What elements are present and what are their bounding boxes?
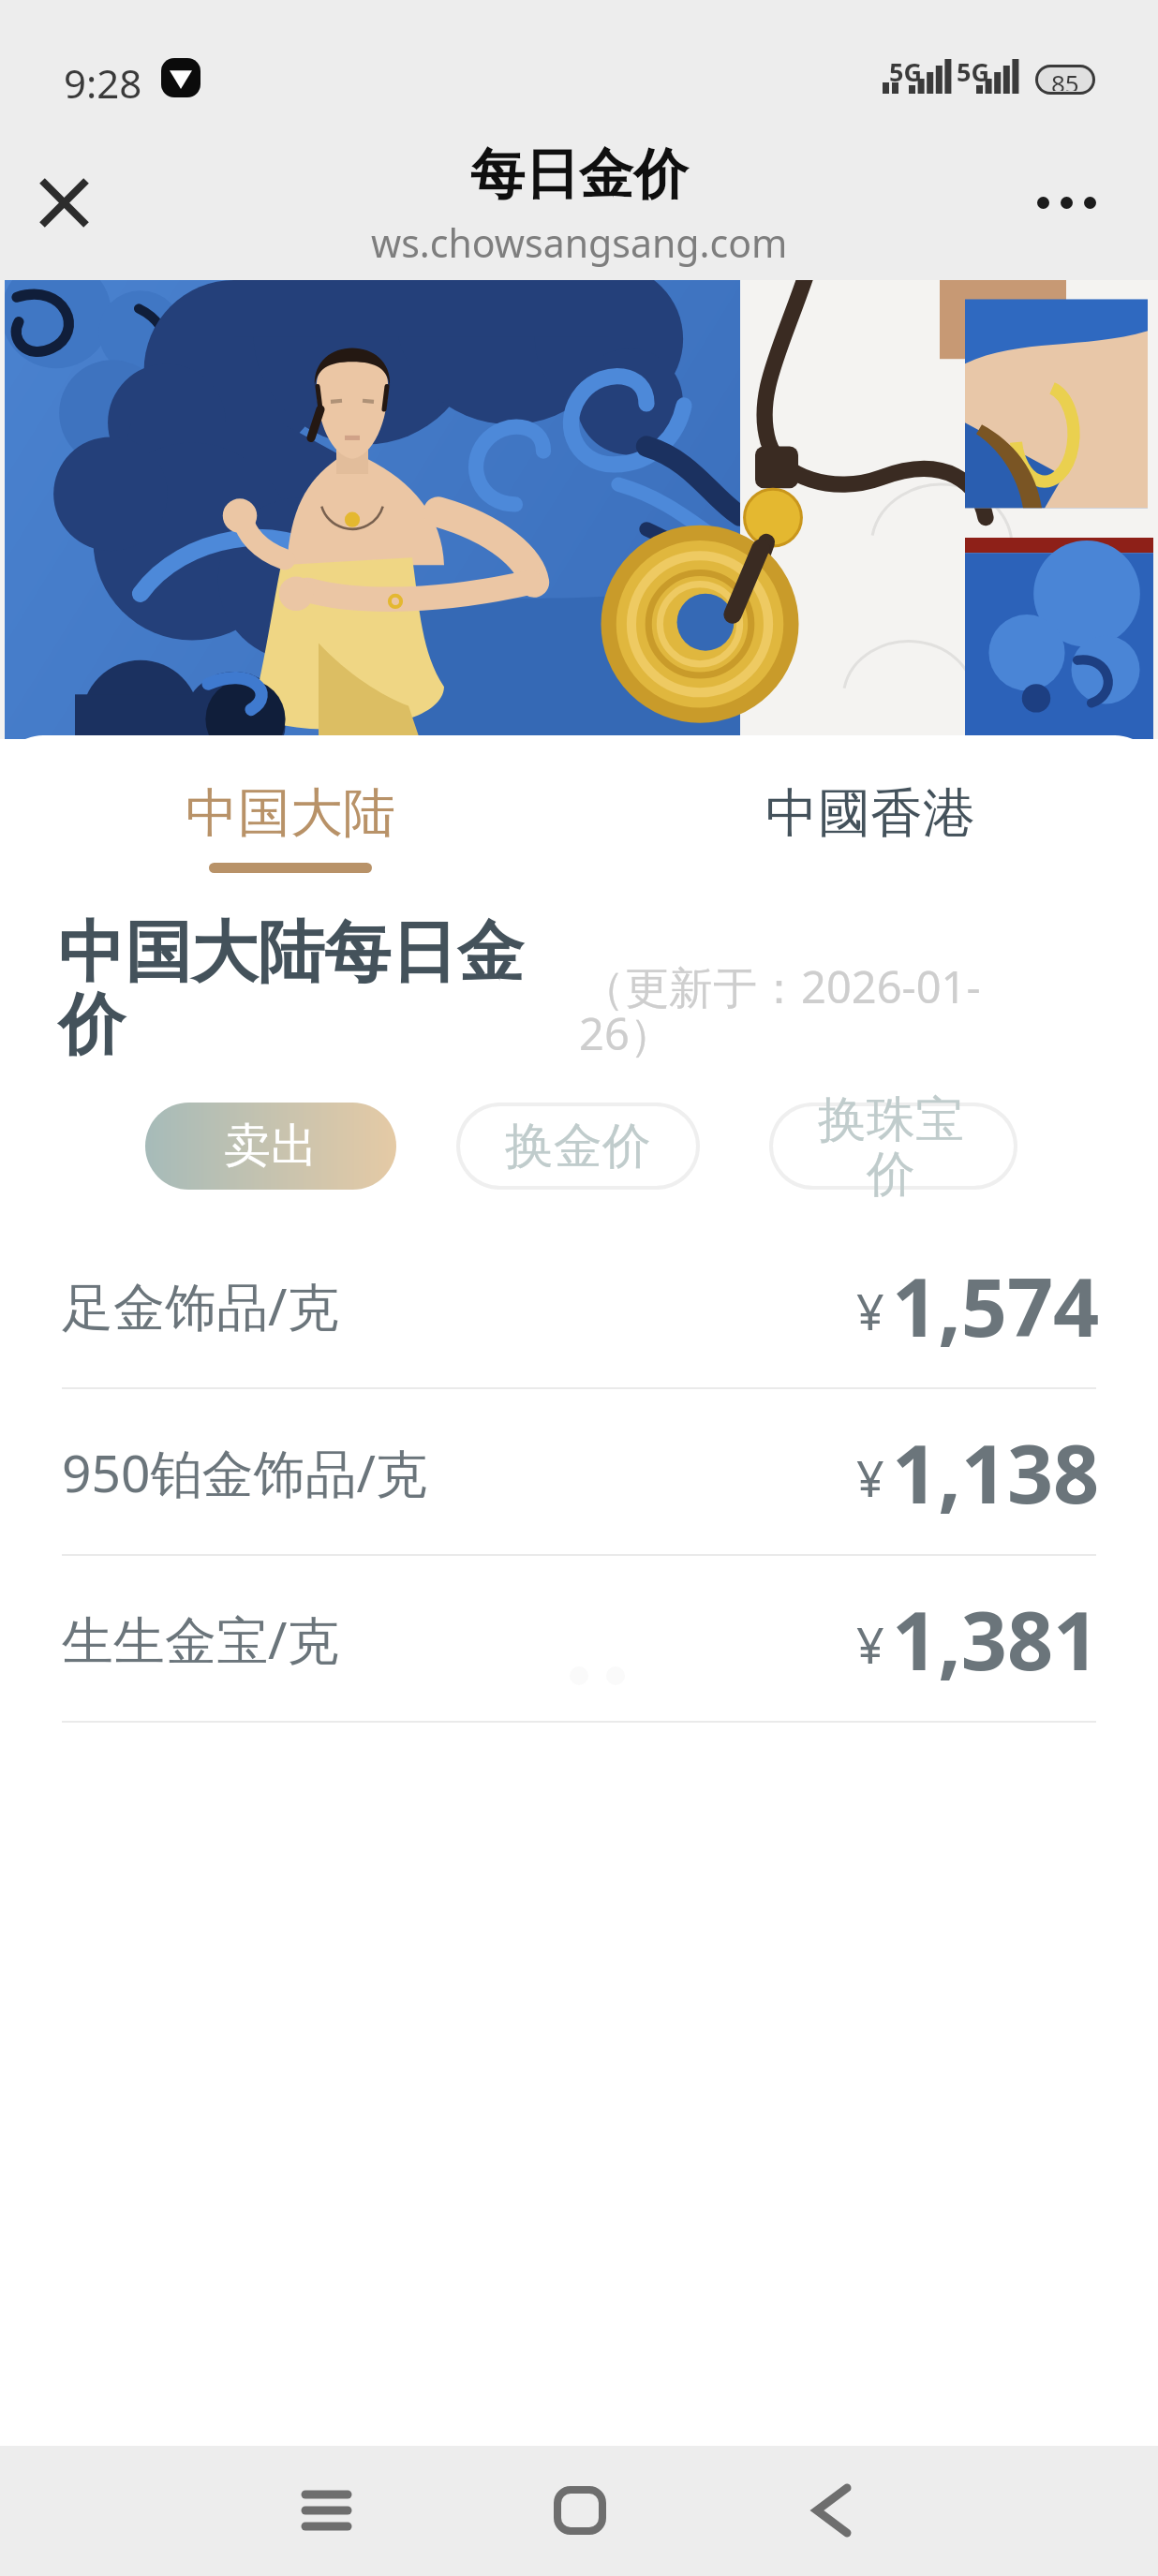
staticText: 5G — [957, 54, 989, 89]
staticText: 85 — [1051, 67, 1079, 91]
staticText: 足金饰品/克 — [62, 1270, 339, 1340]
staticText: 卖出 — [224, 1117, 318, 1176]
staticText: ws.chowsangsang.com — [371, 216, 788, 269]
button[interactable]: More options — [1029, 165, 1104, 240]
staticText: 950铂金饰品/克 — [62, 1437, 427, 1507]
staticText: ¥ — [856, 1278, 884, 1344]
staticText: 1,574 — [892, 1251, 1100, 1360]
button[interactable]: 中國香港 — [722, 780, 1018, 893]
staticText: 生生金宝/克 — [62, 1604, 339, 1674]
staticText: 1,138 — [892, 1417, 1100, 1527]
button[interactable]: 卖出 — [145, 1103, 396, 1190]
staticText: ¥ — [856, 1444, 884, 1511]
staticText: 中国大陆 — [186, 780, 395, 847]
staticText: 5G — [889, 54, 922, 89]
button[interactable]: Back — [776, 2454, 888, 2567]
staticText: 每日金价 — [470, 141, 688, 209]
staticText: （更新于：2026-01- — [581, 956, 981, 1016]
button[interactable]: 生生金宝/克 — [0, 1555, 1158, 1722]
button[interactable]: Close — [24, 163, 103, 242]
button[interactable]: 换金价 — [460, 1106, 696, 1186]
button[interactable]: Home — [524, 2454, 636, 2567]
button[interactable]: 中国大陆 — [142, 780, 438, 893]
staticText: 26） — [579, 1003, 674, 1063]
staticText: 1,381 — [892, 1584, 1100, 1694]
staticText: 换金价 — [505, 1116, 651, 1177]
staticText: 中國香港 — [765, 780, 975, 847]
staticText: 中国大陆每日金价 — [58, 911, 549, 1067]
button[interactable]: 足金饰品/克 — [0, 1221, 1158, 1388]
button[interactable]: Chow Sang Sang jewellery banner — [0, 280, 1158, 739]
staticText: 换珠宝价 — [801, 1089, 981, 1206]
button[interactable]: Recents — [270, 2454, 382, 2567]
staticText: ¥ — [856, 1611, 884, 1678]
button[interactable]: 950铂金饰品/克 — [0, 1388, 1158, 1555]
staticText: 9:28 — [64, 56, 142, 110]
button[interactable] — [773, 1106, 1014, 1186]
